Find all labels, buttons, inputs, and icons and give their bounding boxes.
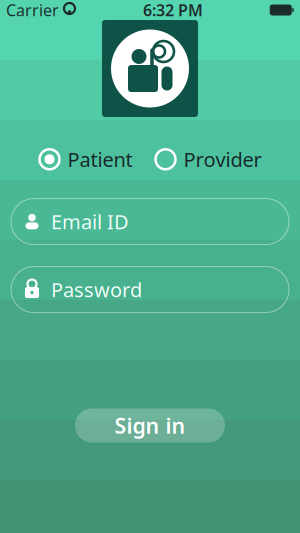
button[interactable]: Sign in (75, 409, 225, 443)
button[interactable]: Password (11, 267, 289, 313)
staticText: Provider (183, 146, 261, 173)
staticText: Password (51, 276, 142, 303)
staticText: Sign in (114, 411, 185, 440)
staticText: Carrier (6, 0, 59, 21)
button[interactable]: Patient (38, 142, 132, 177)
staticText: Email ID (51, 208, 129, 235)
staticText: 6:32 PM (143, 0, 203, 21)
button[interactable]: Email ID (11, 199, 289, 245)
button[interactable]: Provider (154, 142, 261, 177)
staticText: Patient (67, 146, 132, 173)
